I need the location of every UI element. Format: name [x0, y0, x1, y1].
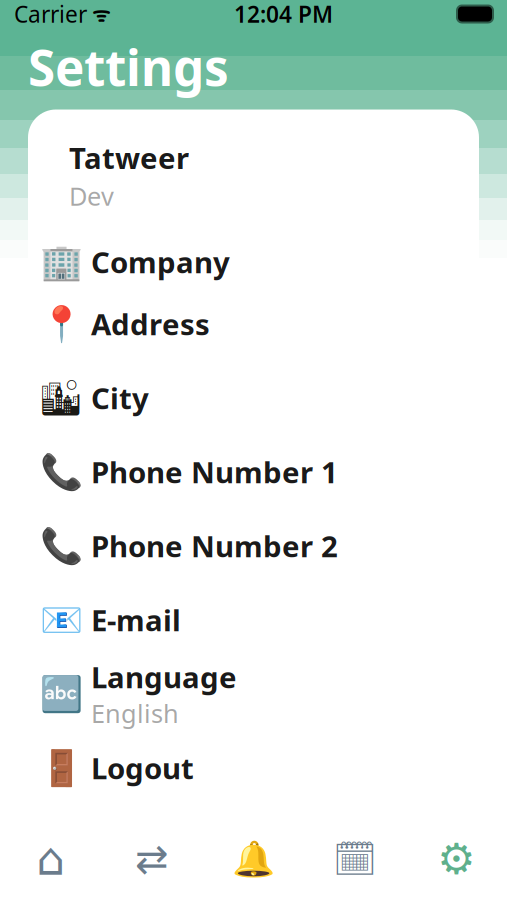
staticText: 📧: [39, 600, 82, 640]
staticText: ᯤ: [87, 1, 110, 27]
staticText: Language: [91, 657, 237, 696]
button[interactable]: Transactions: [101, 818, 203, 900]
staticText: 🏢: [39, 242, 82, 282]
staticText: Logout: [91, 748, 194, 787]
staticText: ⌂: [36, 833, 65, 885]
staticText: 📞: [39, 452, 82, 492]
staticText: City: [91, 378, 149, 417]
staticText: Company: [91, 242, 230, 281]
staticText: 🔔: [232, 839, 275, 879]
button[interactable]: 📞: [28, 435, 479, 509]
staticText: 📞: [39, 526, 82, 566]
staticText: 12:04 PM: [234, 0, 333, 29]
staticText: Carrier: [14, 0, 87, 29]
button[interactable]: 📍: [28, 287, 479, 361]
button[interactable]: 📞: [28, 509, 479, 583]
button[interactable]: Home: [0, 818, 101, 900]
button[interactable]: 🏙: [28, 361, 479, 435]
staticText: ⚙: [437, 835, 475, 883]
staticText: Tatweer: [69, 138, 189, 177]
button[interactable]: 🚪: [28, 731, 479, 805]
staticText: E-mail: [91, 600, 181, 639]
staticText: English: [91, 696, 179, 730]
staticText: 📍: [39, 304, 82, 344]
button[interactable]: Settings: [406, 818, 507, 900]
button[interactable]: 🏢: [28, 213, 479, 287]
staticText: Settings: [28, 34, 229, 99]
staticText: Address: [91, 304, 210, 343]
button[interactable]: 📧: [28, 583, 479, 657]
staticText: 🗓: [333, 839, 377, 879]
button[interactable]: 🔤: [28, 657, 479, 731]
button[interactable]: Calendar: [304, 818, 406, 900]
button[interactable]: Notifications: [203, 818, 304, 900]
staticText: Phone Number 2: [91, 526, 338, 565]
staticText: 🔤: [39, 674, 82, 714]
staticText: 🚪: [39, 748, 82, 788]
staticText: ⇄: [135, 836, 169, 882]
staticText: 🏙: [39, 378, 83, 418]
staticText: Dev: [69, 179, 114, 213]
staticText: Phone Number 1: [91, 452, 338, 491]
